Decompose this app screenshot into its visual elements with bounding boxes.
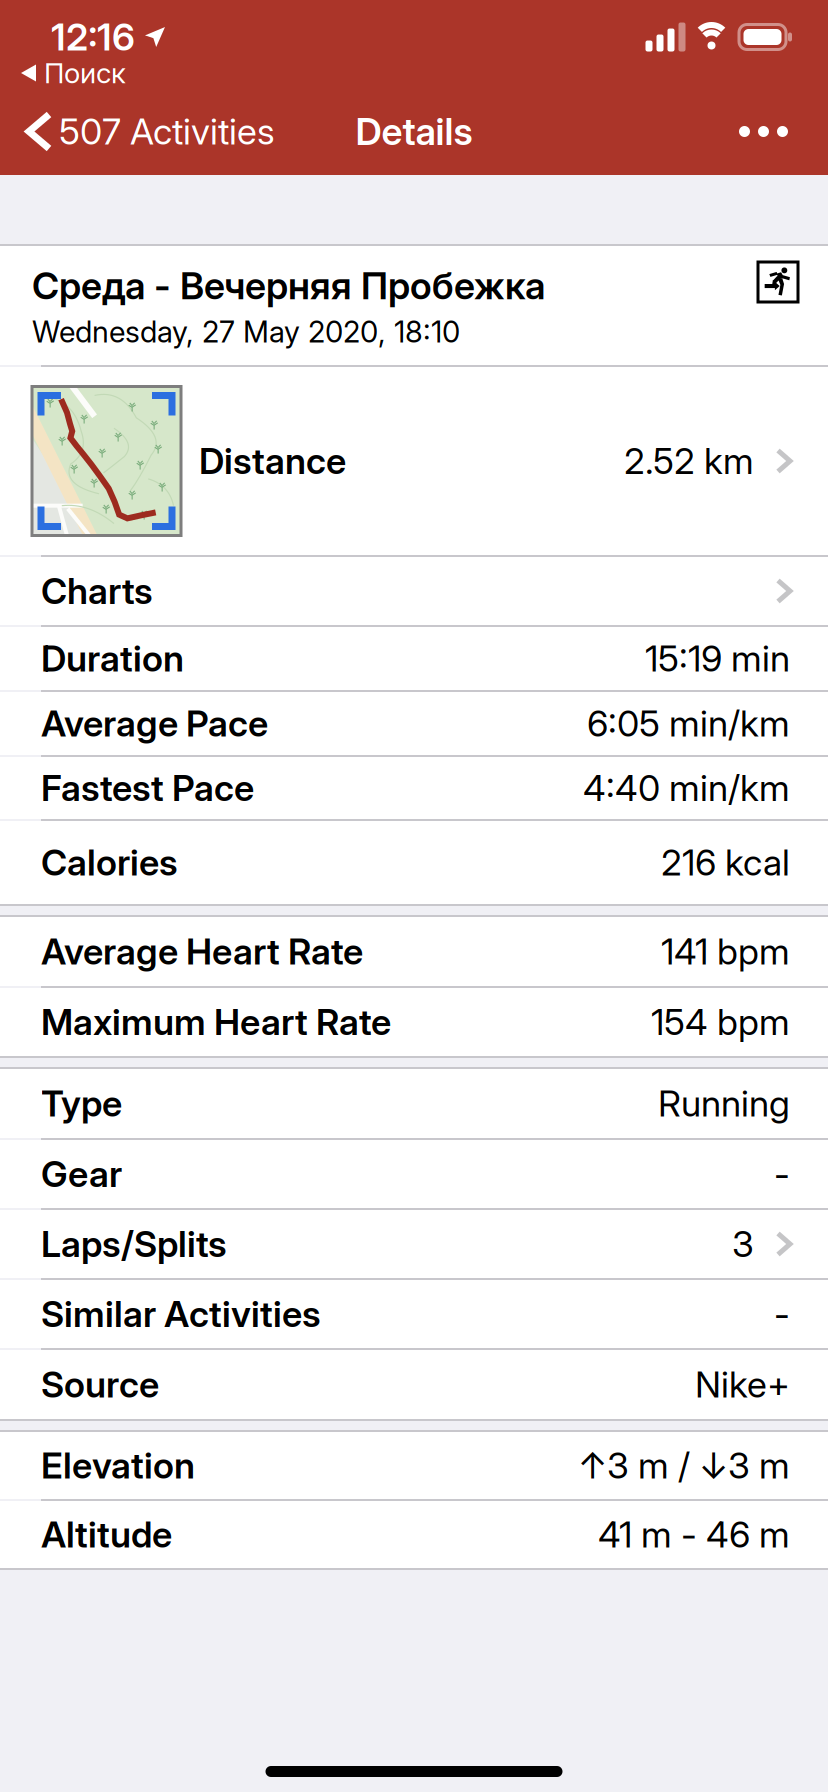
staticText: Type (41, 1082, 122, 1125)
button[interactable]: Поиск (0, 53, 136, 93)
staticText: Elevation (41, 1444, 195, 1487)
staticText: - (774, 1292, 790, 1336)
staticText: Laps/Splits (41, 1222, 227, 1266)
button[interactable]: Calories (0, 821, 828, 904)
button[interactable]: Distance (0, 367, 828, 555)
staticText: Details (355, 109, 472, 154)
staticText: Average Heart Rate (41, 930, 363, 973)
staticText: Altitude (41, 1513, 172, 1556)
staticText: Maximum Heart Rate (41, 1000, 391, 1044)
button[interactable]: Laps/Splits (0, 1210, 828, 1278)
staticText: 6:05 min/km (587, 702, 790, 745)
button[interactable]: Среда - Вечерняя Пробежка (0, 246, 828, 365)
staticText: Wednesday, 27 May 2020, 18:10 (32, 314, 460, 350)
button[interactable]: More options (713, 108, 828, 155)
button[interactable]: Similar Activities (0, 1280, 828, 1348)
staticText: 12:16 (51, 14, 135, 60)
button[interactable]: Charts (0, 557, 828, 625)
staticText: 507 Activities (59, 110, 275, 153)
staticText: Calories (41, 841, 178, 884)
button[interactable]: Duration (0, 627, 828, 690)
button[interactable]: Average Pace (0, 692, 828, 755)
staticText: 4:40 min/km (583, 766, 790, 810)
button[interactable]: Average Heart Rate (0, 917, 828, 986)
staticText: - (774, 1152, 790, 1196)
staticText: Running (658, 1082, 790, 1125)
button[interactable]: Elevation (0, 1432, 828, 1499)
staticText: Среда - Вечерняя Пробежка (32, 263, 545, 308)
button[interactable]: Fastest Pace (0, 757, 828, 819)
staticText: 3 (732, 1222, 754, 1266)
staticText: ↑3 m / ↓3 m (578, 1444, 790, 1487)
staticText: 15:19 min (645, 637, 790, 680)
staticText: Source (41, 1363, 159, 1406)
staticText: 154 bpm (651, 1000, 790, 1044)
button[interactable]: Maximum Heart Rate (0, 988, 828, 1056)
staticText: Distance (199, 439, 346, 483)
button[interactable]: Type (0, 1069, 828, 1138)
button[interactable]: Altitude (0, 1501, 828, 1568)
button[interactable]: 507 Activities (0, 100, 275, 163)
staticText: 41 m - 46 m (598, 1513, 790, 1556)
staticText: Duration (41, 637, 184, 680)
staticText: Similar Activities (41, 1292, 321, 1336)
button[interactable]: Gear (0, 1140, 828, 1208)
staticText: Поиск (44, 56, 126, 90)
staticText: 2.52 km (624, 439, 754, 483)
staticText: 216 kcal (661, 841, 790, 884)
staticText: 141 bpm (661, 930, 790, 973)
staticText: Average Pace (41, 702, 268, 745)
staticText: Gear (41, 1152, 122, 1196)
button[interactable]: Source (0, 1350, 828, 1419)
staticText: Charts (41, 569, 153, 613)
staticText: Fastest Pace (41, 766, 254, 810)
staticText: Nike+ (695, 1363, 790, 1406)
